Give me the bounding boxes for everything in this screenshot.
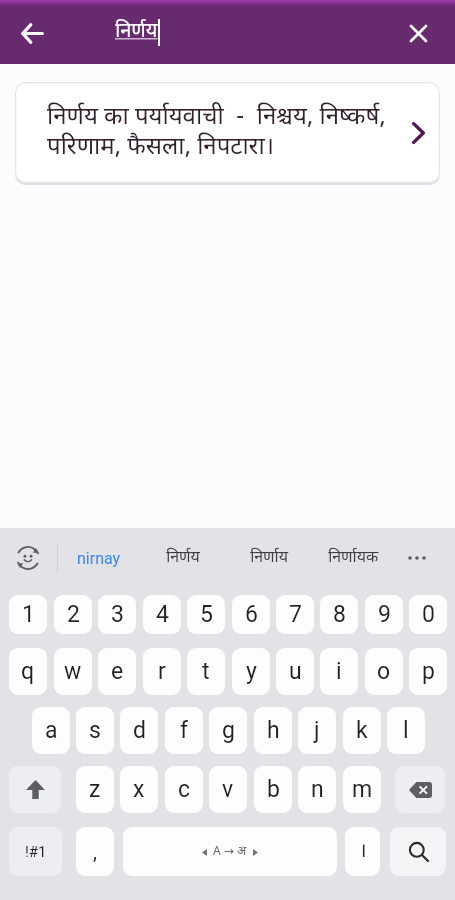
staticText: ।	[359, 839, 367, 865]
button[interactable]: j	[298, 707, 336, 754]
button[interactable]: n	[298, 766, 336, 813]
staticText: निर्णय	[115, 19, 158, 45]
button[interactable]: निर्णय	[145, 528, 221, 588]
button[interactable]: h	[254, 707, 292, 754]
staticText: 9	[378, 601, 391, 628]
button[interactable]: w	[54, 648, 92, 695]
button[interactable]: q	[9, 648, 47, 695]
button[interactable]: निर्णय का पर्यायवाची - निश्चय, निष्कर्ष,…	[15, 82, 440, 183]
staticText: 4	[156, 601, 169, 628]
staticText: d	[133, 717, 146, 744]
staticText: 0	[422, 601, 435, 628]
staticText: 8	[333, 601, 346, 628]
staticText: निर्णय	[166, 548, 200, 569]
button[interactable]: 6	[232, 595, 270, 634]
button[interactable]: r	[143, 648, 181, 695]
staticText: A → अ	[213, 844, 247, 860]
button[interactable]: 0	[409, 595, 447, 634]
button[interactable]: k	[343, 707, 381, 754]
staticText: j	[314, 717, 320, 744]
button[interactable]: !#1	[9, 827, 62, 876]
staticText: a	[45, 717, 58, 744]
staticText: e	[111, 658, 124, 685]
staticText: x	[133, 776, 145, 803]
button[interactable]: t	[187, 648, 225, 695]
button[interactable]: o	[365, 648, 403, 695]
staticText: w	[64, 658, 82, 685]
staticText: t	[202, 658, 210, 685]
button[interactable]: l	[387, 707, 425, 754]
staticText: g	[222, 717, 235, 744]
staticText: 6	[245, 601, 258, 628]
staticText: b	[267, 776, 280, 803]
button[interactable]: m	[343, 766, 381, 813]
button[interactable]: 3	[98, 595, 136, 634]
button[interactable]: 8	[320, 595, 358, 634]
staticText: निर्णायक	[328, 548, 379, 569]
staticText: k	[356, 717, 368, 744]
button[interactable]: निर्णाय	[231, 528, 307, 588]
button[interactable]	[395, 528, 439, 588]
staticText: n	[311, 776, 324, 803]
staticText: r	[158, 658, 166, 685]
button[interactable]: y	[232, 648, 270, 695]
staticText: f	[180, 717, 188, 744]
staticText: o	[377, 658, 391, 685]
button[interactable]: u	[276, 648, 314, 695]
staticText: c	[178, 776, 191, 803]
staticText: 1	[22, 601, 35, 628]
staticText: p	[422, 658, 435, 685]
staticText: निर्णाय	[250, 548, 289, 569]
button[interactable]: ।	[345, 827, 380, 876]
staticText: z	[89, 776, 101, 803]
staticText: 5	[200, 601, 213, 628]
button[interactable]: f	[165, 707, 203, 754]
button[interactable]: z	[76, 766, 114, 813]
staticText: s	[89, 717, 101, 744]
button[interactable]: e	[98, 648, 136, 695]
button[interactable]: 5	[187, 595, 225, 634]
staticText: i	[336, 658, 342, 685]
staticText: v	[222, 776, 234, 803]
button[interactable]: p	[409, 648, 447, 695]
staticText: 7	[289, 601, 302, 628]
button[interactable]: v	[209, 766, 247, 813]
button[interactable]: d	[120, 707, 158, 754]
button[interactable]: 7	[276, 595, 314, 634]
button[interactable]: s	[76, 707, 114, 754]
staticText: m	[352, 776, 373, 803]
button[interactable]	[396, 11, 440, 55]
button[interactable]	[9, 766, 61, 813]
staticText: 3	[111, 601, 124, 628]
staticText: nirnay	[77, 549, 121, 568]
button[interactable]: 2	[54, 595, 92, 634]
button[interactable]: a	[32, 707, 70, 754]
button[interactable]: x	[120, 766, 158, 813]
button[interactable]: i	[320, 648, 358, 695]
button[interactable]	[395, 766, 445, 813]
button[interactable]: b	[254, 766, 292, 813]
button[interactable]	[390, 827, 446, 876]
staticText: निर्णय का पर्यायवाची - निश्चय, निष्कर्ष,…	[47, 102, 386, 164]
button[interactable]: c	[165, 766, 203, 813]
staticText: 2	[67, 601, 80, 628]
staticText: ,	[93, 840, 97, 863]
button[interactable]	[8, 9, 56, 57]
staticText: !#1	[25, 843, 47, 861]
button[interactable]: A → अ	[123, 827, 337, 876]
button[interactable]: nirnay	[64, 528, 134, 588]
staticText: y	[246, 658, 257, 685]
button[interactable]: g	[209, 707, 247, 754]
button[interactable]: 9	[365, 595, 403, 634]
button[interactable]: 4	[143, 595, 181, 634]
button[interactable]: निर्णायक	[315, 528, 391, 588]
staticText: q	[21, 658, 35, 685]
staticText: h	[267, 717, 280, 744]
button[interactable]	[6, 536, 50, 580]
button[interactable]: ,	[76, 827, 114, 876]
staticText: l	[403, 717, 409, 744]
button[interactable]: 1	[9, 595, 47, 634]
staticText: u	[289, 658, 302, 685]
